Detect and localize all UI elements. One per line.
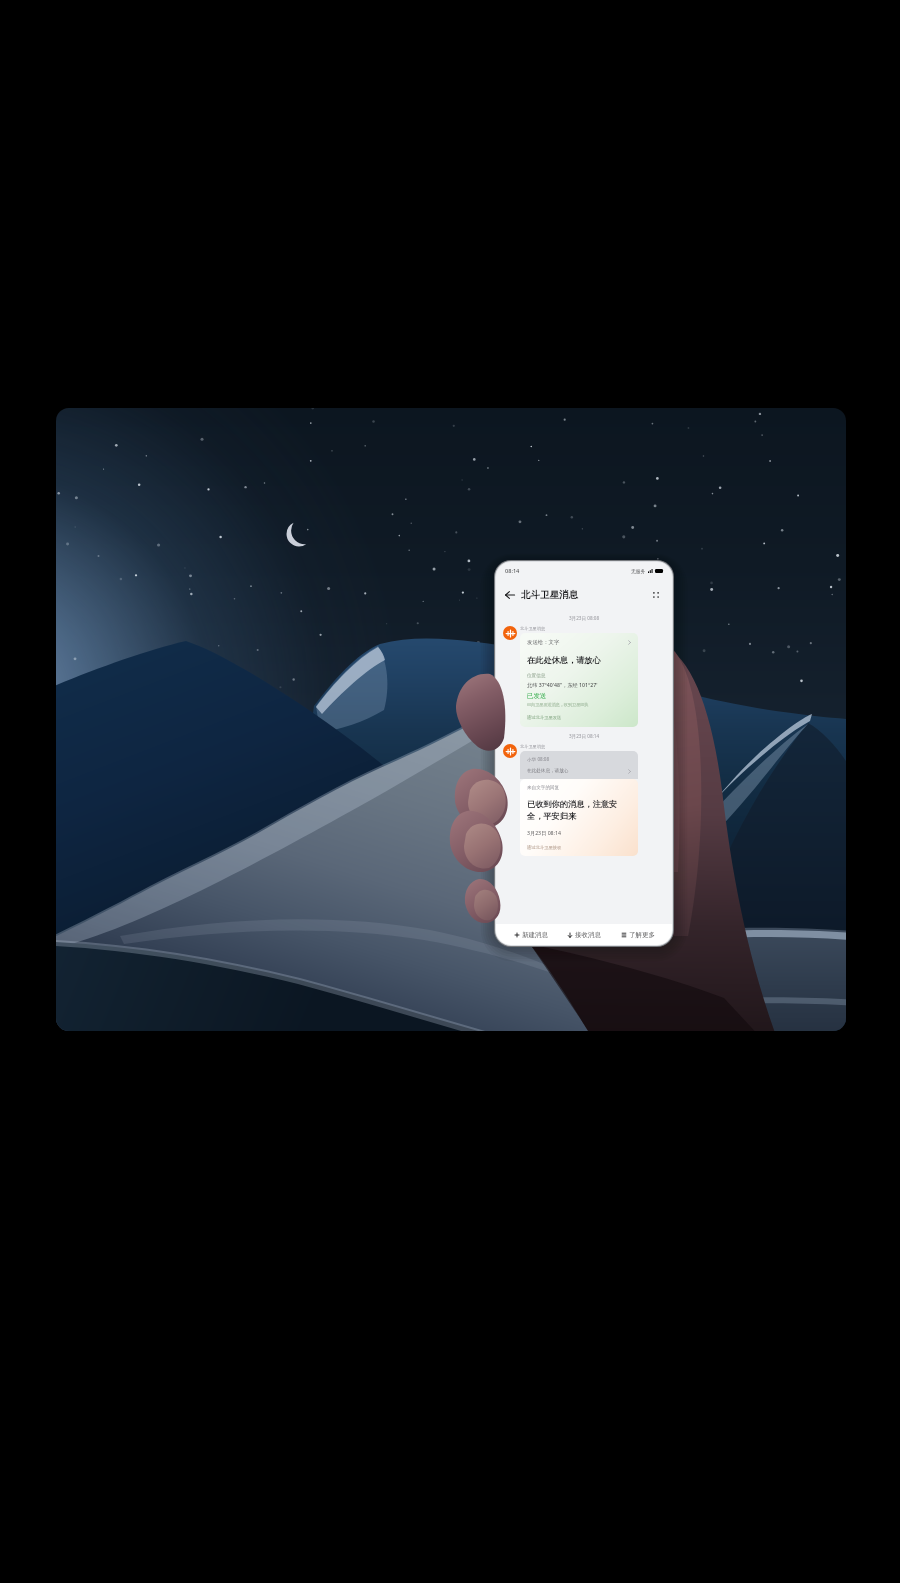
button[interactable]: More options (649, 588, 663, 602)
staticText: 通过北斗卫星接收 (527, 845, 562, 850)
staticText: 3月23日 08:08 (503, 615, 665, 621)
staticText: 已向卫星发送消息，收到卫星回执 (527, 702, 589, 707)
staticText: 接收消息 (575, 931, 601, 939)
button[interactable]: Back (503, 588, 517, 602)
staticText: 北纬 37°40'48"，东经 101°27' (527, 681, 598, 688)
button[interactable]: 小华 08:08 (520, 751, 638, 779)
staticText: 北斗卫星消息 (520, 744, 546, 749)
button[interactable]: 了解更多 (619, 928, 657, 942)
staticText: 已收到你的消息，注意安全，平安归来 (527, 799, 632, 821)
staticText: 3月23日 08:14 (503, 733, 665, 739)
staticText: 3月23日 08:14 (527, 829, 561, 836)
staticText: 了解更多 (629, 931, 655, 939)
staticText: 位置信息 (527, 673, 546, 679)
staticText: 来自文字的回复 (527, 785, 560, 791)
staticText: 新建消息 (522, 931, 548, 939)
button[interactable]: 来自文字的回复 (520, 779, 638, 856)
staticText: 08:14 (505, 567, 520, 575)
staticText: 无服务 (631, 568, 646, 574)
button[interactable]: 发送给：文字 (520, 633, 638, 727)
staticText: 北斗卫星消息 (520, 626, 546, 631)
staticText: 小华 08:08 (527, 756, 550, 762)
staticText: 在此处休息，请放心 (527, 655, 601, 665)
staticText: 北斗卫星消息 (521, 589, 578, 601)
staticText: 在此处休息，请放心 (527, 768, 569, 774)
button[interactable]: 接收消息 (565, 928, 603, 942)
staticText: 发送给：文字 (527, 639, 560, 646)
staticText: 通过北斗卫星发送 (527, 715, 562, 720)
button[interactable]: 新建消息 (512, 928, 550, 942)
staticText: 已发送 (527, 692, 547, 700)
